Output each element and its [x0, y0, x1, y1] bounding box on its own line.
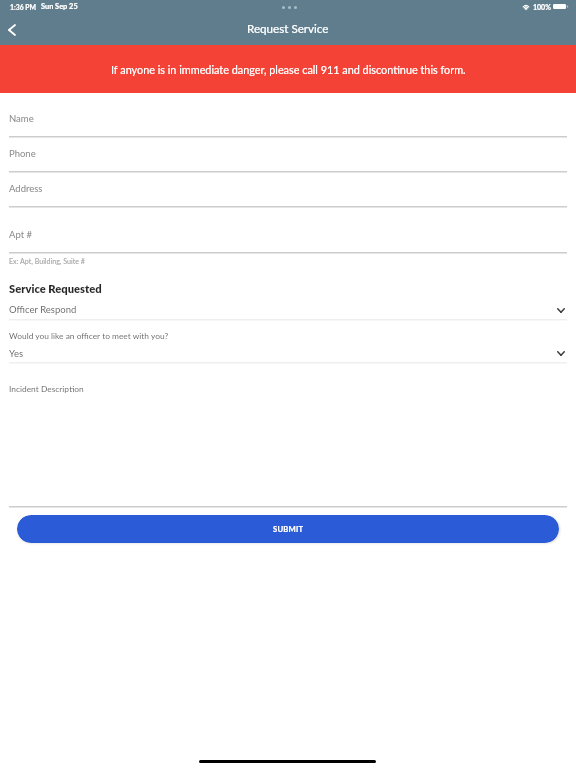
- staticText: Would you like an officer to meet with y…: [9, 331, 169, 341]
- button[interactable]: Address: [9, 172, 567, 207]
- staticText: 1:36 PM: [10, 3, 37, 11]
- staticText: 100%: [533, 3, 551, 11]
- staticText: SUBMIT: [273, 524, 304, 533]
- button[interactable]: Officer Respond, dropdown: [9, 300, 567, 320]
- staticText: Officer Respond: [9, 304, 77, 315]
- staticText: Service Requested: [9, 282, 102, 295]
- staticText: Yes: [9, 348, 24, 359]
- staticText: If anyone is in immediate danger, please…: [111, 63, 466, 76]
- staticText: Sun Sep 25: [41, 2, 78, 11]
- staticText: Phone: [9, 148, 36, 159]
- staticText: Apt #: [9, 229, 33, 240]
- staticText: Address: [9, 183, 43, 194]
- button[interactable]: Name: [9, 109, 567, 137]
- button[interactable]: SUBMIT: [17, 515, 559, 543]
- staticText: Name: [9, 113, 34, 124]
- button[interactable]: Yes, dropdown: [9, 343, 567, 363]
- button[interactable]: Back: [0, 22, 26, 45]
- button[interactable]: Incident Description: [9, 380, 567, 500]
- staticText: Incident Description: [9, 384, 84, 394]
- staticText: Ex: Apt, Building, Suite #: [9, 257, 85, 266]
- button[interactable]: Phone: [9, 137, 567, 172]
- staticText: Request Service: [247, 22, 329, 36]
- button[interactable]: Apt #: [9, 207, 567, 253]
